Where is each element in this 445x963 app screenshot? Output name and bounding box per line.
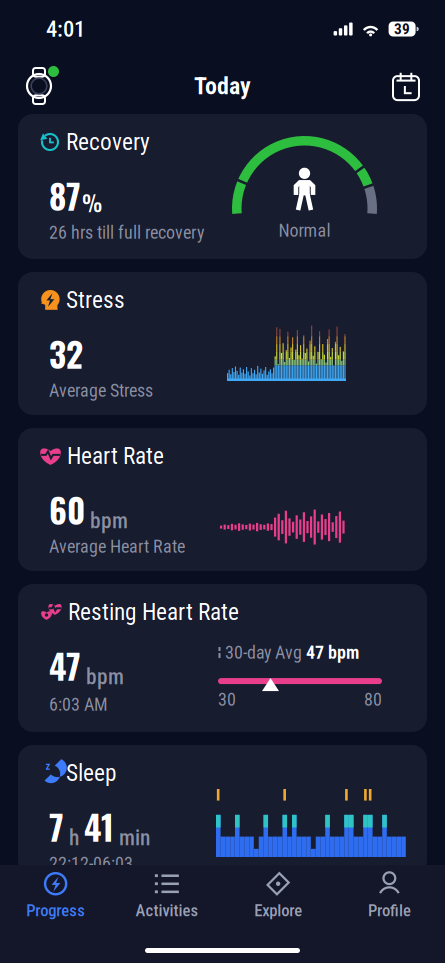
button[interactable]: Progress [0,866,111,926]
button[interactable]: Resting Heart Rate [18,584,427,732]
staticText: % [82,187,102,218]
staticText: Heart Rate [67,442,164,470]
staticText: Profile [368,901,411,920]
staticText: 4:01 [46,16,85,42]
staticText: 87 [49,171,81,220]
staticText: 41 [84,802,114,851]
staticText: Average Heart Rate [49,536,185,557]
staticText: 30-day Avg [225,642,302,663]
button[interactable]: Calendar [383,63,429,109]
staticText: min [119,825,150,850]
button[interactable]: Recovery [18,114,427,259]
staticText: h [69,825,79,850]
staticText: 7 [49,802,64,851]
staticText: 32 [49,329,83,378]
button[interactable]: Activities [111,866,222,926]
staticText: Sleep [66,759,117,787]
staticText: Progress [26,901,85,920]
staticText: Recovery [66,128,150,156]
staticText: 47 bpm [306,642,359,663]
button[interactable]: Explore [222,866,334,926]
staticText: Average Stress [49,380,153,401]
staticText: Activities [135,901,198,920]
button[interactable]: z [18,745,427,875]
staticText: 60 [49,485,85,534]
staticText: z [45,760,50,772]
staticText: 39 [394,20,410,38]
staticText: Stress [66,286,125,314]
button[interactable]: Profile [334,866,445,926]
staticText: 47 [49,641,81,690]
staticText: Today [194,72,251,100]
staticText: 22:12-06:03 [49,853,133,874]
staticText: Resting Heart Rate [68,598,239,626]
staticText: Explore [254,901,302,920]
staticText: bpm [86,664,124,689]
staticText: bpm [90,508,128,533]
button[interactable]: Stress [18,272,427,415]
button[interactable]: Heart Rate [18,428,427,571]
staticText: 80 [364,689,382,710]
staticText: 26 hrs till full recovery [49,222,204,243]
staticText: 30 [218,689,236,710]
staticText: 6:03 AM [49,694,108,715]
staticText: Normal [278,220,330,241]
button[interactable]: Connected watch [16,63,62,109]
